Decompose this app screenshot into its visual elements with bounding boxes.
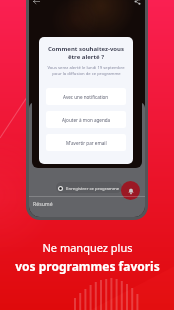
staticText: Avec une notification — [63, 94, 109, 100]
staticText: Comment souhaitez-vous être alerté ? — [48, 45, 124, 61]
staticText: Ajouter à mon agenda — [62, 117, 111, 123]
staticText: Vous serez alerté le lundi 19 septembre — [47, 65, 125, 71]
staticText: Résumé — [33, 200, 53, 207]
staticText: vos programmes favoris — [15, 258, 160, 274]
button[interactable]: Alerte — [121, 181, 140, 200]
staticText: Ne manquez plus — [42, 240, 133, 255]
button[interactable]: Ajouter à mon agenda — [46, 111, 126, 128]
button[interactable]: Avec une notification — [46, 88, 126, 105]
button[interactable]: M'avertir par email — [46, 134, 126, 151]
staticText: M'avertir par email — [66, 140, 107, 146]
button[interactable]: Retour — [31, 0, 42, 7]
button[interactable]: Résumé — [33, 200, 53, 207]
button[interactable]: Partager — [132, 0, 143, 7]
staticText: Enregistrer ce programme — [66, 185, 120, 191]
staticText: pour la diffusion de ce programme — [52, 71, 121, 77]
button[interactable]: Enregistrer ce programme — [56, 182, 122, 193]
